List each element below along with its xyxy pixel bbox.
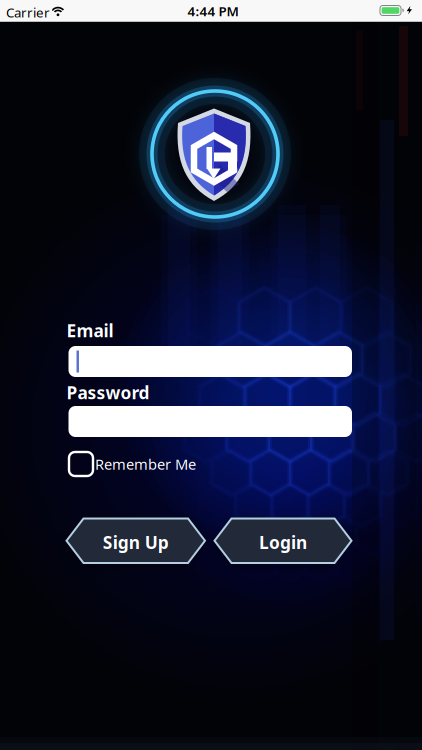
staticText: 4:44 PM bbox=[187, 2, 238, 20]
staticText: Remember Me bbox=[95, 454, 196, 474]
button[interactable] bbox=[68, 346, 352, 377]
staticText: Login bbox=[259, 531, 307, 554]
button[interactable] bbox=[68, 406, 352, 437]
button[interactable]: Login bbox=[214, 517, 351, 564]
button[interactable]: Remember Me bbox=[69, 452, 196, 476]
staticText: Sign Up bbox=[103, 531, 169, 554]
staticText: Email bbox=[66, 319, 113, 342]
staticText: Carrier bbox=[6, 3, 50, 21]
button[interactable]: Sign Up bbox=[66, 517, 205, 564]
staticText: Password bbox=[66, 381, 149, 404]
